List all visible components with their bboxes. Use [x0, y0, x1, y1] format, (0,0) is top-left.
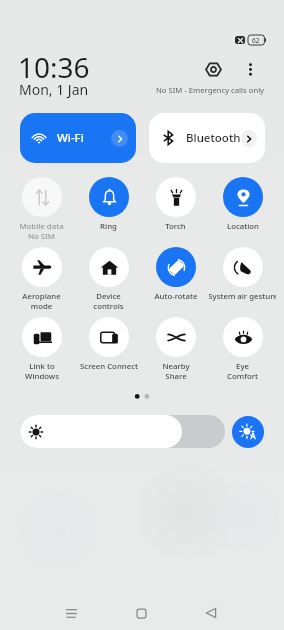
staticText: Bluetooth — [186, 130, 241, 146]
staticText: Device controls — [93, 291, 124, 311]
button[interactable]: Wi-Fi — [20, 113, 136, 163]
staticText: Auto-rotate — [154, 291, 198, 302]
button[interactable]: Link to Windows — [8, 317, 75, 387]
button[interactable]: Brightness — [20, 415, 225, 448]
button[interactable]: Auto-rotate — [142, 247, 209, 317]
staticText: Wi-Fi — [57, 130, 84, 146]
button[interactable]: Back — [187, 595, 235, 630]
staticText: 10:36 — [18, 48, 90, 86]
button[interactable]: Aeroplane mode — [8, 247, 75, 317]
button[interactable]: Nearby Share — [142, 317, 209, 387]
button[interactable]: Ring — [75, 177, 142, 247]
button[interactable]: Mobile data No SIM — [8, 177, 75, 247]
button[interactable]: Bluetooth — [149, 113, 265, 163]
staticText: Eye Comfort — [227, 361, 258, 381]
button[interactable]: Settings — [200, 56, 226, 82]
button[interactable]: Screen Connect — [75, 317, 142, 387]
button[interactable]: Auto brightness — [232, 416, 264, 448]
staticText: Link to Windows — [25, 361, 59, 381]
button[interactable]: Recents — [47, 595, 95, 630]
button[interactable]: Eye Comfort — [209, 317, 276, 387]
staticText: Screen Connect — [80, 361, 138, 372]
button[interactable]: System air gesture — [209, 247, 276, 317]
staticText: Mobile data No SIM — [19, 221, 64, 241]
button[interactable]: Home — [117, 595, 165, 630]
staticText: Torch — [165, 221, 186, 232]
button[interactable]: Device controls — [75, 247, 142, 317]
staticText: 62 — [252, 36, 260, 45]
button[interactable]: Torch — [142, 177, 209, 247]
staticText: System air gesture — [209, 291, 276, 302]
staticText: Mon, 1 Jan — [19, 80, 89, 99]
staticText: No SIM - Emergency calls only — [156, 85, 265, 95]
staticText: Aeroplane mode — [22, 291, 61, 311]
staticText: Nearby Share — [162, 361, 190, 381]
button[interactable]: Location — [209, 177, 276, 247]
button[interactable]: More options — [237, 56, 263, 82]
staticText: Ring — [100, 221, 117, 232]
staticText: Location — [227, 221, 259, 232]
